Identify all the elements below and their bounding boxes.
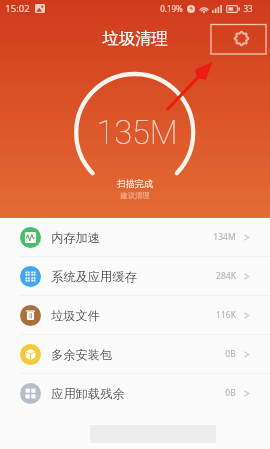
staticText: 垃圾清理 [102,28,168,49]
staticText: 0B [225,387,236,399]
staticText: 建议清理 [120,191,150,200]
button[interactable]: 应用卸载残余 [0,374,270,412]
staticText: 多余安装包 [51,347,112,362]
staticText: 垃圾文件 [51,308,100,323]
button[interactable]: 多余安装包 [0,335,270,373]
staticText: 内存加速 [51,230,100,245]
staticText: 系统及应用缓存 [51,269,137,284]
button[interactable]: 内存加速 [0,218,270,256]
button[interactable]: 系统及应用缓存 [0,257,270,295]
button[interactable]: 垃圾文件 [0,296,270,334]
staticText: 0B [225,348,236,360]
staticText: 0.19% [160,3,183,14]
staticText: 134M [213,231,236,243]
staticText: 116K [216,309,236,321]
staticText: 应用卸载残余 [51,386,125,401]
staticText: 15:02 [5,2,30,15]
staticText: 284K [216,270,236,282]
staticText: 33 [243,3,253,14]
staticText: 扫描完成 [117,178,153,189]
staticText: 135M [96,114,178,152]
button[interactable]: Settings [228,25,254,51]
